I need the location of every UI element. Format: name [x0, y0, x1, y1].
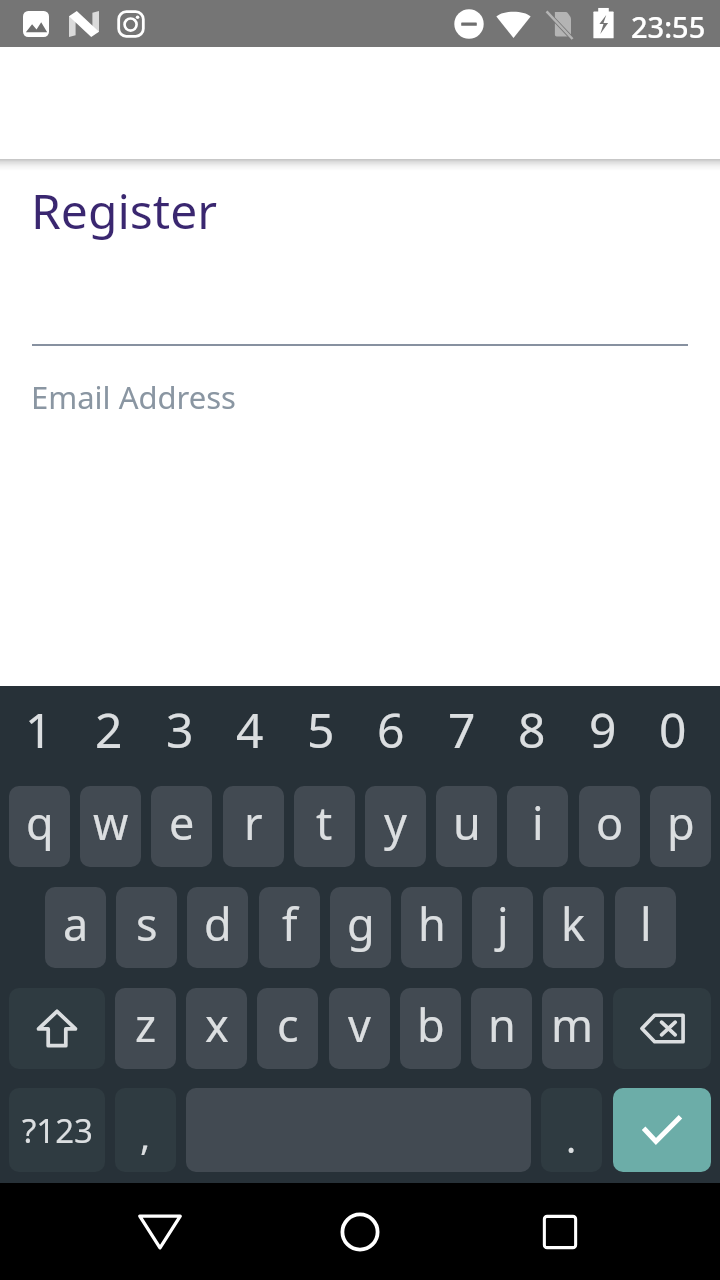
staticText: f [282, 893, 298, 954]
button[interactable]: n [471, 988, 532, 1069]
staticText: . [566, 1112, 577, 1164]
button[interactable]: Back [112, 1184, 208, 1280]
button[interactable]: 5 [286, 694, 356, 764]
button[interactable]: ?123 [9, 1088, 105, 1172]
staticText: v [348, 994, 371, 1055]
staticText: 6 [377, 697, 405, 762]
button[interactable]: m [542, 988, 603, 1069]
button[interactable]: x [186, 988, 247, 1069]
staticText: p [667, 792, 695, 853]
button[interactable]: e [151, 786, 212, 867]
button[interactable]: t [294, 786, 355, 867]
button[interactable]: v [329, 988, 390, 1069]
button[interactable]: s [116, 887, 177, 968]
button[interactable]: y [365, 786, 426, 867]
staticText: s [136, 893, 158, 954]
button[interactable]: h [401, 887, 462, 968]
staticText: r [244, 792, 263, 853]
button[interactable]: Recents [512, 1184, 608, 1280]
button[interactable]: . [541, 1088, 602, 1172]
button[interactable]: i [507, 786, 568, 867]
staticText: 7 [448, 697, 476, 762]
button[interactable]: 4 [215, 694, 285, 764]
staticText: 23:55 [631, 7, 706, 46]
button[interactable]: Home [312, 1184, 408, 1280]
button[interactable]: g [330, 887, 391, 968]
staticText: o [596, 792, 624, 853]
button[interactable]: 3 [145, 694, 215, 764]
staticText: a [63, 893, 89, 954]
staticText: 4 [236, 697, 264, 762]
button[interactable]: o [579, 786, 640, 867]
button[interactable]: k [543, 887, 604, 968]
staticText: d [204, 893, 232, 954]
button[interactable]: 2 [74, 694, 144, 764]
staticText: w [93, 792, 129, 853]
button[interactable]: 9 [568, 694, 638, 764]
staticText: q [26, 792, 54, 853]
button[interactable]: u [436, 786, 497, 867]
button[interactable]: r [223, 786, 284, 867]
button[interactable]: 0 [638, 694, 708, 764]
button[interactable]: 7 [427, 694, 497, 764]
button[interactable]: j [472, 887, 533, 968]
button[interactable]: l [615, 887, 676, 968]
staticText: e [169, 792, 195, 853]
button[interactable]: c [257, 988, 318, 1069]
button[interactable]: 1 [4, 694, 74, 764]
button[interactable]: a [45, 887, 106, 968]
staticText: 3 [166, 697, 194, 762]
staticText: ?123 [22, 1108, 93, 1153]
staticText: n [488, 994, 516, 1055]
staticText: b [417, 994, 445, 1055]
staticText: m [551, 994, 594, 1055]
staticText: k [561, 893, 586, 954]
staticText: 8 [518, 697, 546, 762]
staticText: Email Address [31, 376, 236, 418]
staticText: j [497, 893, 509, 954]
button[interactable]: f [259, 887, 320, 968]
staticText: g [347, 893, 375, 954]
button[interactable]: w [80, 786, 141, 867]
staticText: Register [31, 178, 218, 243]
staticText: 1 [25, 697, 53, 762]
staticText: 5 [307, 697, 335, 762]
staticText: l [640, 893, 652, 954]
button[interactable]: 8 [497, 694, 567, 764]
button[interactable]: b [400, 988, 461, 1069]
staticText: 9 [589, 697, 617, 762]
staticText: z [135, 994, 157, 1055]
staticText: , [140, 1109, 151, 1161]
staticText: 2 [95, 697, 123, 762]
button[interactable]: Backspace [613, 988, 711, 1069]
staticText: t [316, 792, 333, 853]
button[interactable]: Done [613, 1088, 711, 1172]
button[interactable]: , [115, 1088, 176, 1172]
button[interactable]: q [9, 786, 70, 867]
button[interactable]: p [650, 786, 711, 867]
staticText: u [453, 792, 481, 853]
staticText: y [384, 792, 407, 853]
button[interactable]: z [115, 988, 176, 1069]
staticText: i [532, 792, 544, 853]
button[interactable]: 6 [356, 694, 426, 764]
button[interactable]: Shift [9, 988, 105, 1069]
staticText: x [205, 994, 229, 1055]
staticText: 0 [659, 697, 687, 762]
button[interactable]: d [187, 887, 248, 968]
staticText: c [277, 994, 299, 1055]
staticText: h [418, 893, 446, 954]
